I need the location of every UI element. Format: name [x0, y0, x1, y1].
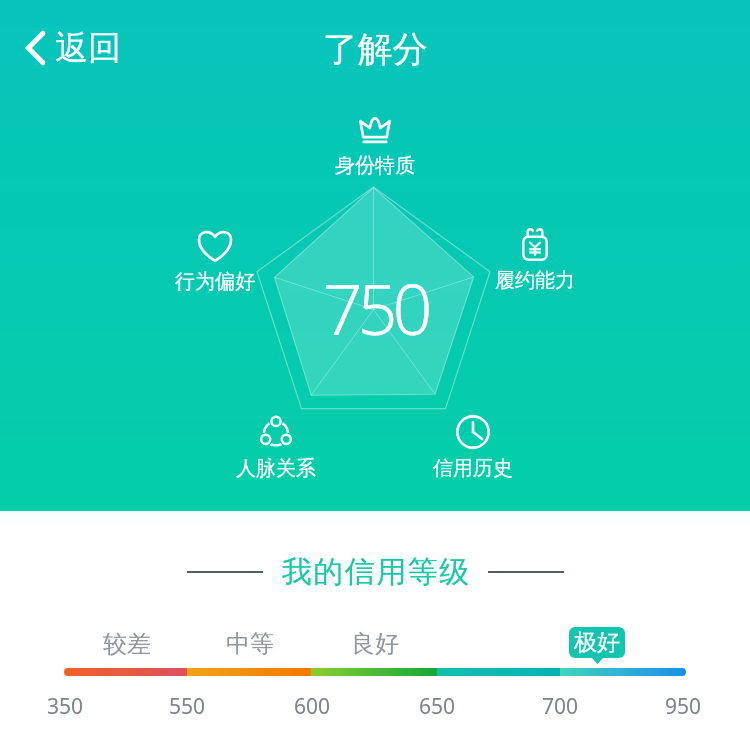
button[interactable]: 返回: [18, 21, 129, 75]
staticText: 良好: [315, 629, 435, 659]
staticText: 600: [252, 692, 372, 721]
staticText: 返回: [55, 27, 121, 69]
button[interactable]: 信用历史: [413, 415, 533, 481]
staticText: 较差: [67, 629, 187, 659]
staticText: 行为偏好: [155, 269, 275, 294]
staticText: 350: [5, 692, 125, 721]
button[interactable]: 极好: [569, 627, 625, 664]
staticText: 950: [623, 692, 743, 721]
button[interactable]: 人脉关系: [216, 415, 336, 481]
staticText: 我的信用等级: [281, 553, 470, 591]
staticText: 信用历史: [413, 456, 533, 481]
staticText: 身份特质: [315, 153, 435, 178]
button[interactable]: 履约能力: [475, 227, 595, 293]
staticText: 700: [500, 692, 620, 721]
staticText: 650: [377, 692, 497, 721]
staticText: 750: [0, 260, 750, 355]
button[interactable]: 身份特质: [315, 112, 435, 178]
staticText: 了解分: [0, 27, 750, 71]
staticText: 极好: [574, 628, 620, 657]
staticText: 人脉关系: [216, 456, 336, 481]
staticText: 履约能力: [475, 268, 595, 293]
button[interactable]: 行为偏好: [155, 228, 275, 294]
staticText: 550: [127, 692, 247, 721]
staticText: 中等: [190, 629, 310, 659]
